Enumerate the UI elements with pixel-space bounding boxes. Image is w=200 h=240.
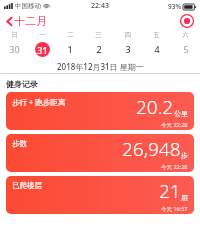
- staticText: 20.2: [136, 94, 174, 120]
- staticText: 一: [39, 31, 46, 39]
- button[interactable]: 3: [113, 41, 142, 57]
- button[interactable]: 步行 + 跑步距离: [6, 92, 194, 130]
- button[interactable]: 30: [0, 41, 28, 57]
- staticText: 93%: [168, 2, 181, 11]
- staticText: 五: [153, 31, 160, 39]
- staticText: 已爬楼层: [12, 181, 42, 190]
- staticText: 5: [183, 43, 189, 55]
- staticText: 1: [67, 43, 73, 55]
- staticText: 31: [37, 44, 48, 56]
- button[interactable]: 2: [84, 41, 113, 57]
- staticText: 2: [96, 43, 102, 55]
- staticText: 4: [154, 43, 160, 55]
- staticText: 26,948: [122, 136, 181, 162]
- staticText: 21: [159, 178, 181, 204]
- staticText: 健身记录: [6, 79, 38, 89]
- staticText: 今天 22:28: [161, 163, 188, 171]
- button[interactable]: 步数: [6, 134, 194, 172]
- staticText: 2018年12月31日 星期一: [57, 61, 144, 72]
- button[interactable]: 已爬楼层: [6, 176, 194, 214]
- button[interactable]: 十二月: [4, 12, 49, 30]
- staticText: 二: [67, 31, 74, 39]
- staticText: 步数: [12, 139, 27, 148]
- staticText: 公里: [174, 109, 188, 118]
- staticText: 日: [11, 31, 18, 39]
- button[interactable]: 5: [171, 41, 200, 57]
- button[interactable]: Profile: [180, 14, 194, 28]
- staticText: 22:43: [91, 1, 109, 11]
- staticText: 30: [9, 43, 20, 55]
- staticText: 今天 22:28: [161, 121, 188, 129]
- staticText: 层: [181, 193, 188, 202]
- staticText: 中国移动: [15, 2, 41, 10]
- staticText: 今天 16:57: [161, 205, 188, 213]
- staticText: 步: [181, 151, 188, 160]
- staticText: 六: [182, 31, 189, 39]
- staticText: 3: [125, 43, 131, 55]
- button[interactable]: 1: [56, 41, 84, 57]
- staticText: 十二月: [14, 14, 47, 28]
- staticText: 四: [124, 31, 131, 39]
- staticText: 步行 + 跑步距离: [12, 97, 66, 107]
- staticText: 三: [95, 31, 102, 39]
- button[interactable]: 4: [142, 41, 171, 57]
- button[interactable]: 31: [28, 41, 56, 57]
